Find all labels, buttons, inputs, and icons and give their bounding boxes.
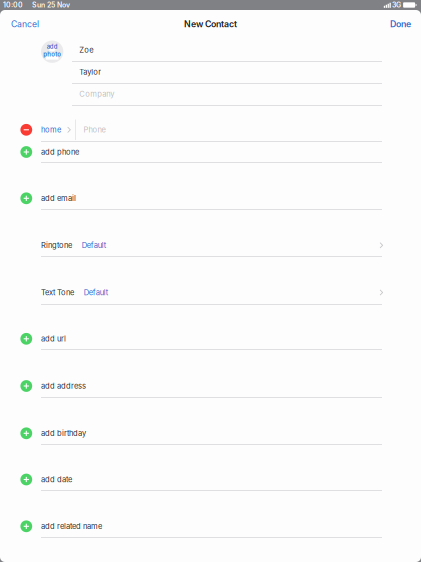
staticText: Taylor bbox=[79, 67, 101, 77]
button[interactable]: add url bbox=[0, 328, 421, 349]
staticText: add related name bbox=[41, 522, 102, 531]
button[interactable]: add related name bbox=[0, 516, 421, 537]
staticText: Default bbox=[82, 241, 106, 250]
button[interactable]: Ringtone bbox=[0, 235, 421, 256]
staticText: Zoe bbox=[79, 45, 93, 55]
staticText: Sun 25 Nov bbox=[32, 1, 70, 9]
staticText: add birthday bbox=[41, 429, 86, 438]
button[interactable]: add date bbox=[0, 469, 421, 490]
staticText: Default bbox=[84, 288, 108, 297]
staticText: New Contact bbox=[184, 19, 237, 29]
staticText: add address bbox=[41, 381, 86, 391]
staticText: add bbox=[47, 43, 58, 50]
button[interactable]: Remove phone bbox=[20, 124, 32, 136]
button[interactable]: home bbox=[41, 125, 71, 134]
staticText: add url bbox=[41, 334, 66, 343]
staticText: Company bbox=[79, 89, 114, 99]
staticText: add phone bbox=[41, 147, 79, 157]
button[interactable]: Text Tone bbox=[0, 282, 421, 303]
staticText: Ringtone bbox=[41, 241, 72, 250]
button[interactable]: add phone bbox=[0, 141, 421, 162]
staticText: home bbox=[41, 125, 61, 134]
staticText: 10:00 bbox=[3, 1, 23, 9]
staticText: add date bbox=[41, 475, 72, 484]
button[interactable]: Add photo bbox=[41, 40, 63, 63]
button[interactable]: add birthday bbox=[0, 423, 421, 444]
button[interactable]: Phone bbox=[0, 119, 421, 140]
staticText: Text Tone bbox=[41, 288, 74, 297]
staticText: Done bbox=[390, 19, 411, 29]
staticText: Cancel bbox=[11, 19, 39, 29]
button[interactable]: Taylor bbox=[0, 61, 421, 82]
button[interactable]: add address bbox=[0, 375, 421, 396]
button[interactable]: add email bbox=[0, 188, 421, 209]
staticText: photo bbox=[43, 51, 61, 58]
staticText: add email bbox=[41, 194, 76, 203]
staticText: 3G bbox=[392, 1, 401, 9]
button[interactable]: Company bbox=[0, 83, 421, 104]
staticText: Phone bbox=[83, 125, 105, 134]
button[interactable]: Cancel bbox=[0, 12, 62, 36]
button[interactable]: Zoe bbox=[0, 39, 421, 60]
button[interactable]: Done bbox=[359, 12, 421, 36]
